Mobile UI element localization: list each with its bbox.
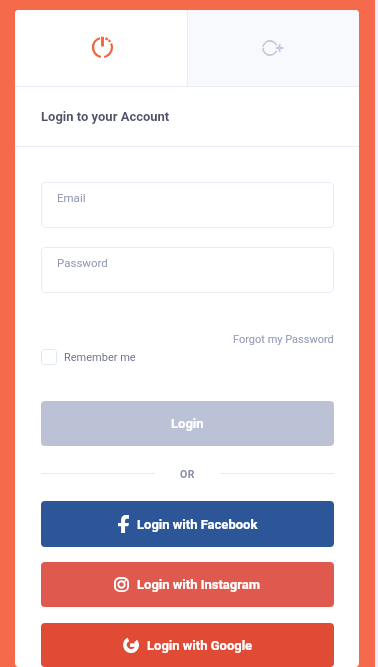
staticText: Login with Instagram [137,577,261,592]
staticText: Login to your Account [41,109,170,124]
button[interactable]: Login with Instagram [41,562,334,607]
staticText: Remember me [64,351,136,364]
button[interactable]: Forgot my Password [233,333,334,346]
staticText: Email [57,191,86,204]
button[interactable]: Email [41,182,334,228]
staticText: Login with Facebook [137,517,258,532]
button[interactable]: Login with Google [41,623,334,667]
button[interactable]: Login with Facebook [41,501,334,547]
staticText: OR [180,468,195,480]
button[interactable]: Password [41,247,334,293]
button[interactable]: Remember me [41,349,136,365]
button[interactable]: Login tab [15,10,187,86]
button[interactable]: Login [41,401,334,446]
staticText: Password [57,256,108,269]
staticText: Login [171,416,204,431]
button[interactable]: Register tab [188,10,359,86]
staticText: Forgot my Password [233,333,334,346]
staticText: Login with Google [147,638,253,653]
